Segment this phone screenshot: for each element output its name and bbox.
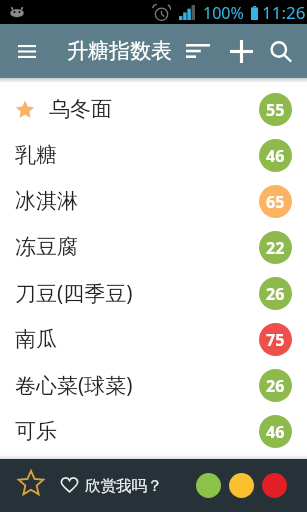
staticText: 冰淇淋 — [15, 188, 78, 214]
button[interactable]: Low GI — [196, 473, 221, 498]
button[interactable]: 刀豆(四季豆) — [0, 270, 307, 316]
staticText: 65 — [266, 191, 285, 213]
staticText: 欣赏我吗？ — [85, 476, 163, 496]
button[interactable]: 卷心菜(球菜) — [0, 362, 307, 408]
staticText: 冻豆腐 — [15, 234, 78, 260]
staticText: 南瓜 — [15, 326, 57, 352]
button[interactable]: 冰淇淋 — [0, 178, 307, 224]
staticText: 55 — [266, 99, 285, 121]
staticText: 46 — [266, 421, 285, 443]
staticText: 100% — [203, 2, 244, 24]
button[interactable]: Medium GI — [229, 473, 254, 498]
button[interactable]: 乳糖 — [0, 132, 307, 178]
staticText: 75 — [266, 329, 285, 351]
staticText: 卷心菜(球菜) — [15, 371, 133, 400]
button[interactable]: High GI — [262, 473, 287, 498]
staticText: 46 — [266, 145, 285, 167]
staticText: 乌冬面 — [49, 96, 112, 122]
button[interactable]: Sort — [186, 24, 210, 78]
button[interactable]: Menu — [18, 24, 36, 78]
button[interactable]: 冻豆腐 — [0, 224, 307, 270]
button[interactable]: Like — [60, 473, 79, 495]
staticText: 刀豆(四季豆) — [15, 279, 133, 308]
button[interactable]: Rate — [16, 468, 46, 498]
button[interactable]: Add — [230, 24, 253, 78]
staticText: 26 — [266, 283, 285, 305]
staticText: 11:26 — [262, 1, 306, 24]
staticText: 升糖指数表 — [67, 38, 172, 64]
staticText: 26 — [266, 375, 285, 397]
button[interactable]: 可乐 — [0, 408, 307, 454]
staticText: 可乐 — [15, 418, 57, 444]
staticText: 乳糖 — [15, 142, 57, 168]
button[interactable]: Search — [270, 24, 293, 78]
button[interactable]: 乌冬面 — [0, 86, 307, 132]
button[interactable]: 南瓜 — [0, 316, 307, 362]
staticText: 22 — [266, 237, 285, 259]
